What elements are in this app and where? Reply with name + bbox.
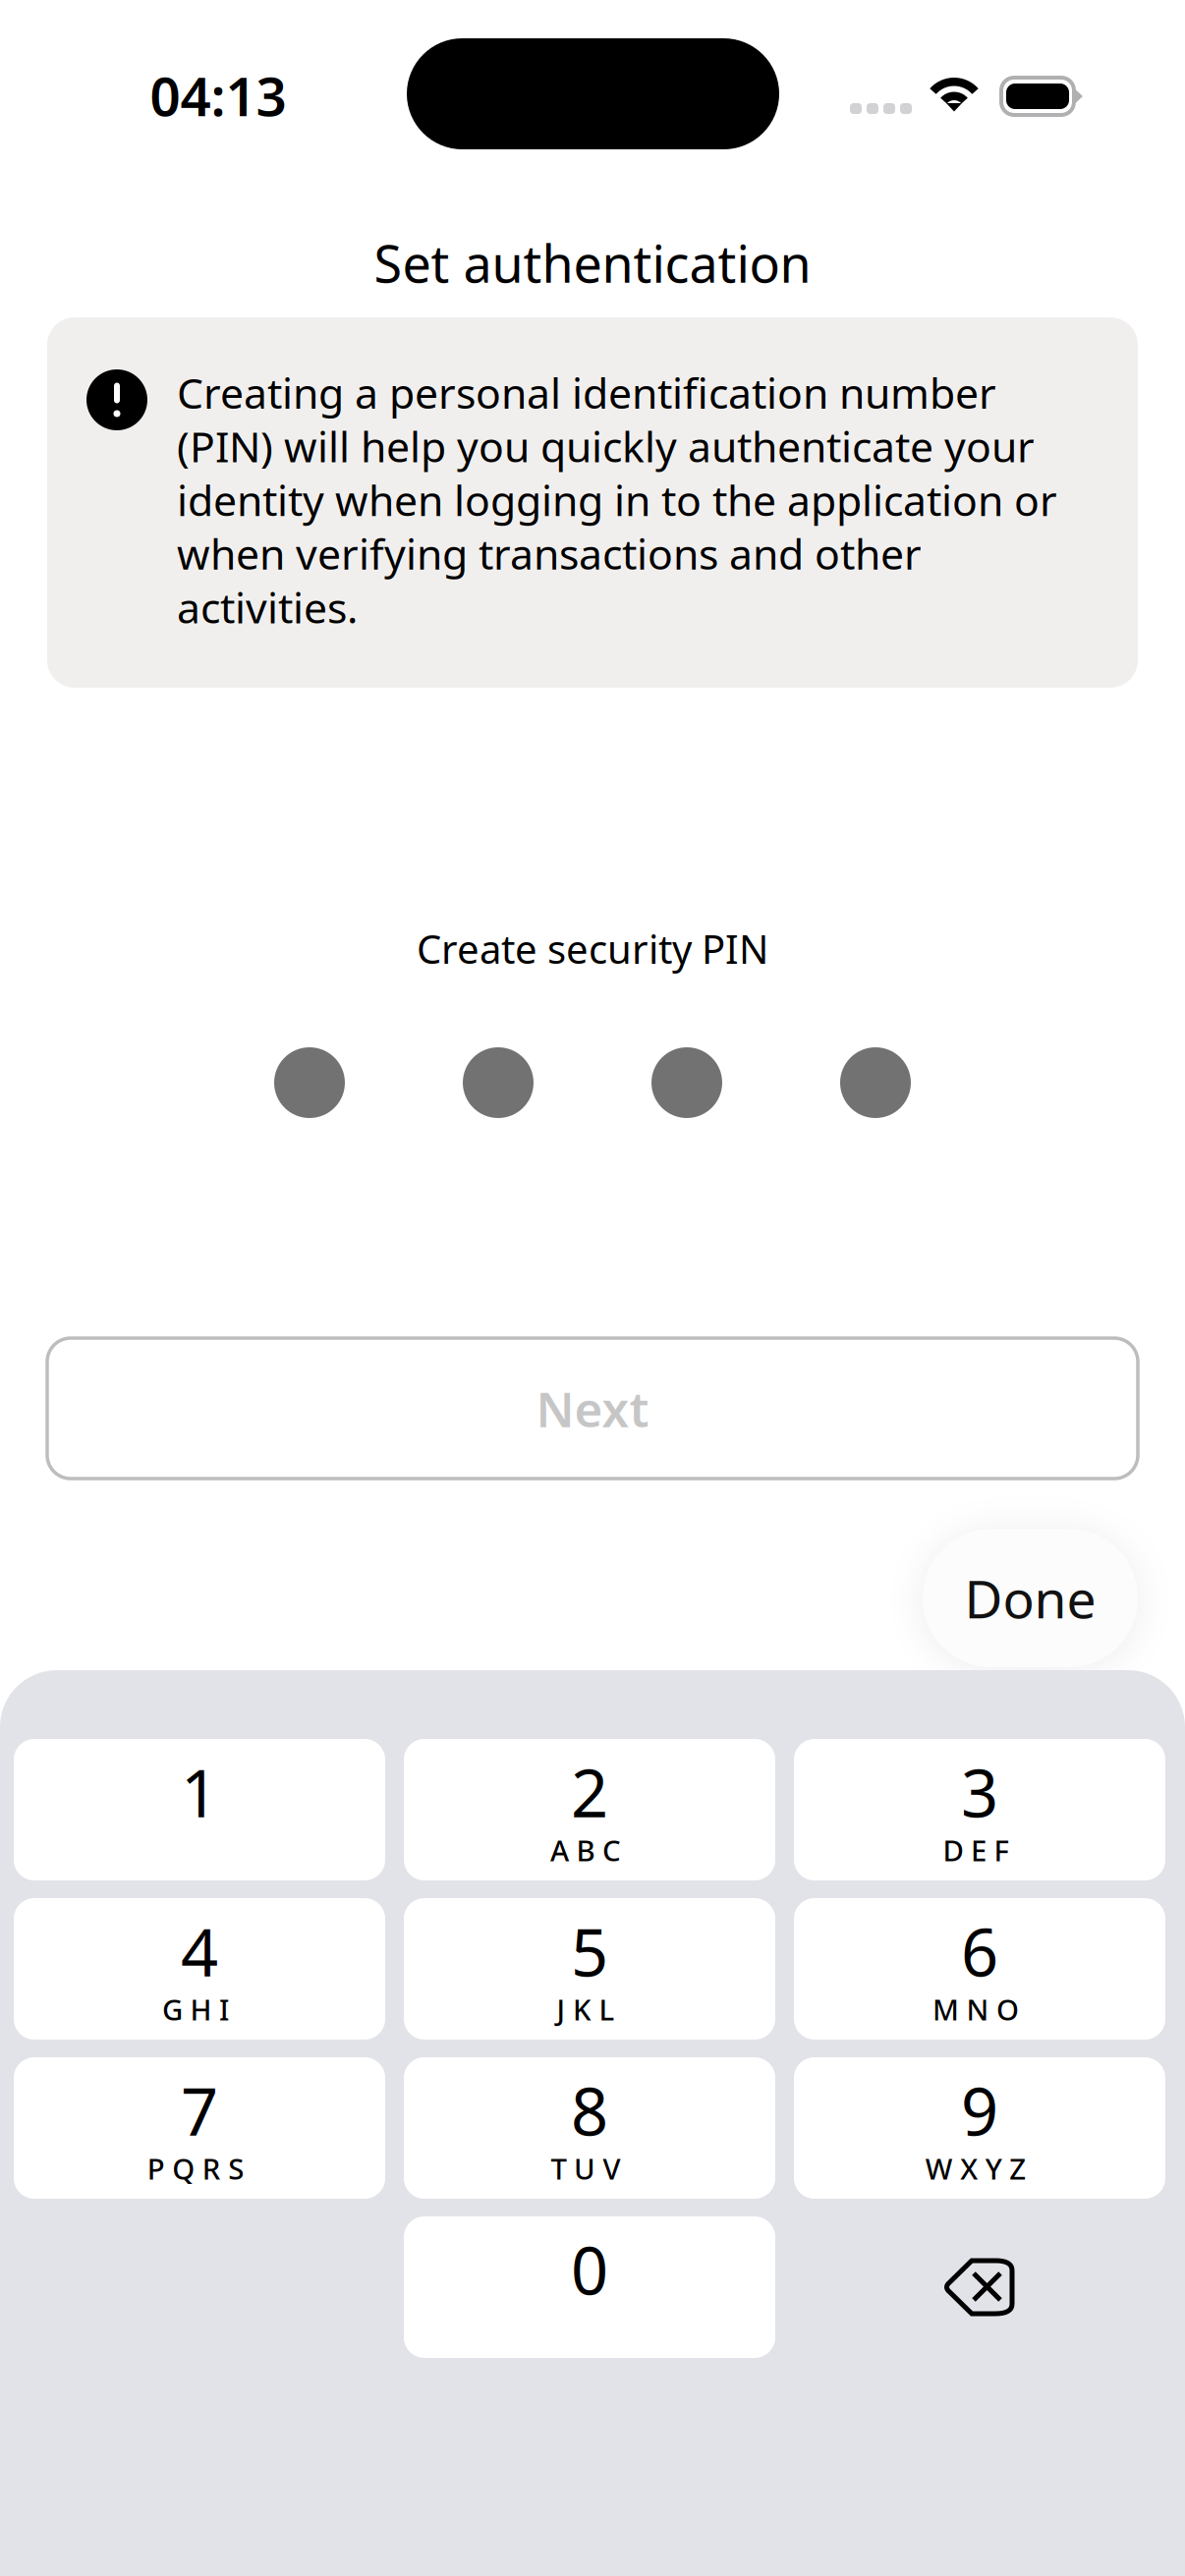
button[interactable]: 5: [404, 1898, 775, 2040]
staticText: PQRS: [147, 2149, 244, 2187]
button[interactable]: Delete: [794, 2216, 1165, 2358]
button[interactable]: 1: [14, 1739, 385, 1880]
staticText: GHI: [162, 1990, 229, 2028]
staticText: TUV: [551, 2149, 621, 2187]
staticText: ABC: [550, 1831, 621, 1869]
button[interactable]: Done: [923, 1529, 1138, 1667]
staticText: JKL: [557, 1990, 615, 2028]
staticText: 1: [181, 1748, 218, 1835]
button[interactable]: 6: [794, 1898, 1165, 2040]
staticText: 0: [571, 2226, 608, 2313]
staticText: 7: [181, 2067, 218, 2154]
staticText: 8: [571, 2067, 608, 2154]
staticText: 3: [961, 1748, 998, 1835]
button[interactable]: 7: [14, 2057, 385, 2199]
staticText: Set authentication: [374, 229, 811, 297]
button[interactable]: 0: [404, 2216, 775, 2358]
staticText: 04:13: [150, 60, 286, 131]
staticText: Create security PIN: [417, 923, 768, 975]
staticText: 2: [571, 1748, 608, 1835]
staticText: 6: [961, 1908, 998, 1995]
button[interactable]: 3: [794, 1739, 1165, 1880]
staticText: DEF: [943, 1831, 1009, 1869]
staticText: 4: [181, 1908, 218, 1995]
staticText: Creating a personal identification numbe…: [177, 364, 1057, 635]
staticText: WXYZ: [925, 2149, 1026, 2187]
button[interactable]: 4: [14, 1898, 385, 2040]
button[interactable]: 8: [404, 2057, 775, 2199]
staticText: 5: [571, 1908, 608, 1995]
button[interactable]: Next: [47, 1338, 1138, 1479]
staticText: Next: [536, 1376, 649, 1440]
staticText: 9: [961, 2067, 998, 2154]
staticText: Done: [964, 1563, 1096, 1633]
staticText: MNO: [932, 1990, 1019, 2028]
button[interactable]: 2: [404, 1739, 775, 1880]
button[interactable]: 9: [794, 2057, 1165, 2199]
